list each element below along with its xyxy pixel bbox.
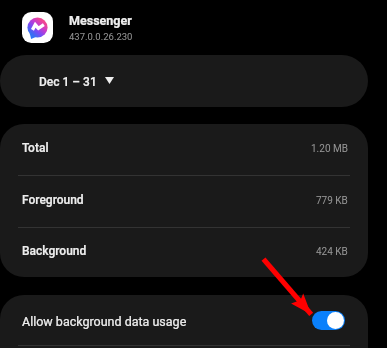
staticText: Messenger [69, 13, 132, 28]
staticText: Total [22, 141, 49, 155]
staticText: 424 KB [316, 246, 348, 258]
button[interactable]: Total [0, 124, 368, 175]
staticText: Background [22, 244, 87, 258]
button[interactable]: Dec 1 – 31 [0, 55, 368, 107]
button[interactable]: Allow background data usage [312, 311, 345, 330]
staticText: 437.0.0.26.230 [69, 31, 133, 42]
button[interactable]: Foreground [0, 176, 368, 227]
button[interactable]: Background [0, 228, 368, 277]
staticText: Dec 1 – 31 [39, 75, 97, 89]
staticText: Allow background data usage [22, 314, 187, 329]
staticText: 779 KB [316, 195, 348, 207]
staticText: Foreground [22, 193, 84, 207]
staticText: 1.20 MB [311, 143, 348, 155]
button[interactable]: Allow background data usage [0, 295, 368, 345]
